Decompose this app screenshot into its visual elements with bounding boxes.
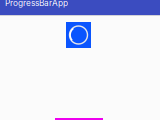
staticText: ProgressBarApp [5, 0, 68, 8]
